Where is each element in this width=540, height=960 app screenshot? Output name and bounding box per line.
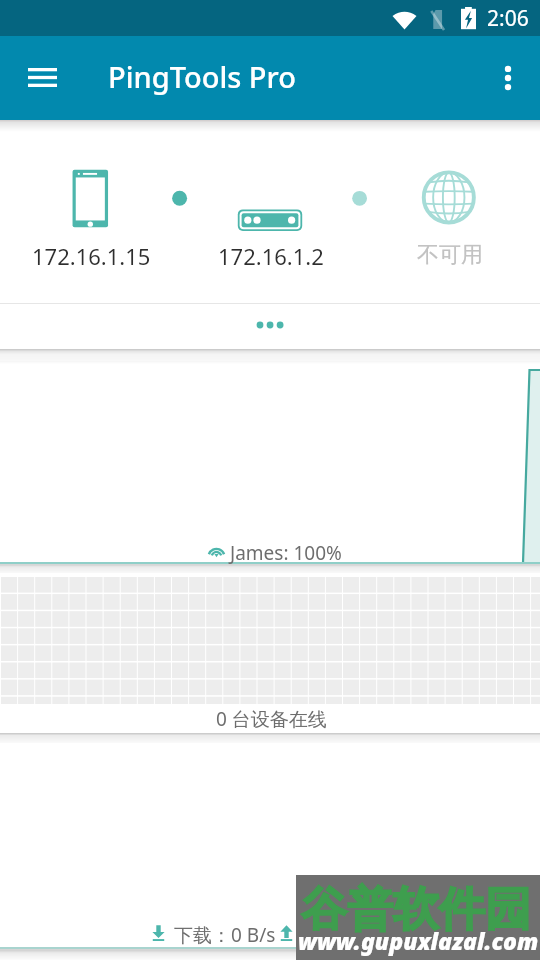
staticText: 172.16.1.15	[32, 241, 151, 271]
staticText: PingTools Pro	[108, 57, 296, 96]
button[interactable]: 172.16.1.15	[0, 120, 540, 304]
button[interactable]: Open navigation drawer	[6, 42, 78, 114]
staticText: James: 100%	[230, 540, 342, 566]
staticText: 2:06	[487, 4, 529, 33]
staticText: 谷普软件园	[301, 881, 531, 939]
staticText: 下载：0 B/s	[174, 922, 276, 948]
button[interactable]: More options	[480, 50, 536, 106]
button[interactable]: 0 台设备在线	[0, 573, 540, 733]
staticText: 不可用	[417, 241, 483, 269]
staticText: www.gupuxlazal.com	[298, 925, 539, 956]
staticText: 0 台设备在线	[216, 706, 327, 732]
button[interactable]	[0, 304, 540, 349]
staticText: 172.16.1.2	[218, 241, 324, 271]
